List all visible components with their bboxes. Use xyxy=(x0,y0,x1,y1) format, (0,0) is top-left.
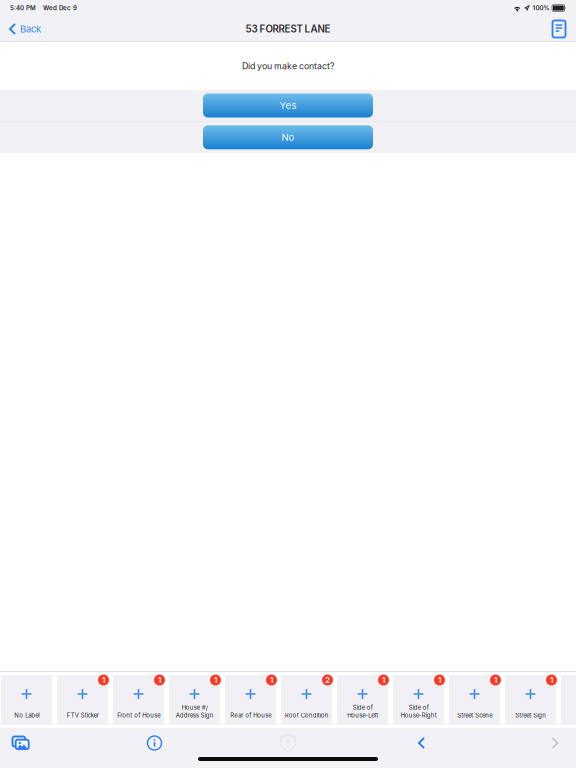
button[interactable]: House #/ Address Sign xyxy=(169,675,220,725)
staticText: Yes xyxy=(279,100,296,111)
staticText: 5:40 PM xyxy=(10,4,36,12)
staticText: 1 xyxy=(102,675,105,685)
staticText: Did you make contact? xyxy=(242,61,334,71)
staticText: Street Sign xyxy=(515,712,546,719)
button[interactable]: Side of House-Right xyxy=(393,675,444,725)
staticText: 1 xyxy=(158,675,161,685)
staticText: 100% xyxy=(532,4,549,12)
button[interactable]: Next xyxy=(534,732,576,754)
staticText: Side of House-Left xyxy=(347,704,378,719)
button[interactable]: Photos xyxy=(0,732,42,754)
staticText: No xyxy=(281,131,294,143)
button[interactable]: Safety xyxy=(267,732,309,754)
staticText: Wed Dec 9 xyxy=(43,4,77,12)
staticText: FTV Sticker xyxy=(66,712,98,719)
staticText: 53 FORREST LANE xyxy=(245,23,330,35)
staticText: 1 xyxy=(438,675,441,685)
button[interactable]: Previous xyxy=(400,732,442,754)
button[interactable]: FTV Sticker xyxy=(57,675,108,725)
staticText: 1 xyxy=(214,675,217,685)
button[interactable]: Information xyxy=(133,732,175,754)
button[interactable]: Notes xyxy=(543,17,575,41)
staticText: 1 xyxy=(494,675,497,685)
staticText: Front of House xyxy=(117,712,160,719)
staticText: Back xyxy=(20,23,41,35)
staticText: 1 xyxy=(270,675,273,685)
button[interactable]: Street Scene xyxy=(449,675,500,725)
button[interactable]: Street Sign xyxy=(505,675,556,725)
button[interactable]: No Label xyxy=(1,675,52,725)
button[interactable]: Side of House-Left xyxy=(337,675,388,725)
button[interactable]: Back xyxy=(1,20,49,38)
staticText: 1 xyxy=(550,675,553,685)
staticText: House #/ Address Sign xyxy=(175,704,213,719)
staticText: 1 xyxy=(382,675,385,685)
staticText: Street Scene xyxy=(457,712,492,719)
staticText: 2 xyxy=(325,675,330,685)
staticText: No Label xyxy=(14,712,39,719)
staticText: Roof Condition xyxy=(284,712,328,719)
staticText: Side of House-Right xyxy=(400,704,436,719)
button[interactable]: Yes xyxy=(0,90,576,121)
button[interactable]: Front of House xyxy=(113,675,164,725)
staticText: Rear of House xyxy=(230,712,271,719)
button[interactable]: Rear of House xyxy=(225,675,276,725)
button[interactable]: No xyxy=(0,122,576,153)
button[interactable]: Roof Condition xyxy=(281,675,332,725)
